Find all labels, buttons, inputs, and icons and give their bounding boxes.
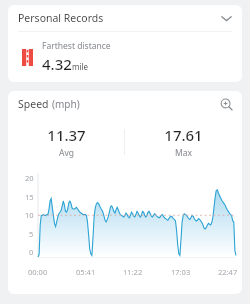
staticText: Avg: [59, 147, 74, 159]
staticText: 4.32: [42, 54, 72, 74]
staticText: 00:00: [28, 267, 48, 277]
staticText: (mph): [52, 97, 80, 111]
staticText: 17:03: [171, 267, 191, 277]
staticText: mile: [72, 61, 89, 72]
staticText: 05:41: [76, 267, 96, 277]
staticText: 11.37: [47, 125, 86, 145]
button[interactable]: Zoom in: [217, 95, 235, 113]
staticText: 5: [29, 229, 34, 239]
staticText: 10: [25, 210, 34, 220]
staticText: 22:47: [218, 267, 238, 277]
staticText: 11:22: [123, 267, 143, 277]
staticText: Farthest distance: [42, 40, 111, 52]
staticText: 0: [29, 247, 34, 257]
staticText: Personal Records: [18, 11, 104, 25]
staticText: 20: [25, 173, 34, 183]
staticText: Max: [175, 147, 192, 159]
button[interactable]: Personal Records: [8, 5, 242, 31]
staticText: Speed: [18, 97, 49, 111]
other: Collapse: [217, 9, 235, 27]
button[interactable]: Farthest distance: [8, 32, 242, 82]
staticText: 17.61: [164, 125, 203, 145]
staticText: 15: [25, 192, 34, 202]
